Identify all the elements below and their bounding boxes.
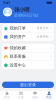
button[interactable]: 退出登录 — [2, 82, 54, 88]
staticText: 消息 — [32, 96, 38, 99]
button[interactable]: 张小明 — [0, 5, 56, 18]
staticText: 首页 — [4, 96, 10, 99]
button[interactable]: 我的收藏 — [2, 44, 54, 52]
staticText: 联系客服 — [10, 54, 26, 59]
button[interactable]: 联系客服 — [2, 52, 54, 61]
staticText: 张小明 — [14, 7, 29, 13]
staticText: ID 8866552104 — [14, 14, 38, 17]
staticText: 我的资产 — [10, 34, 26, 39]
staticText: 9:41 — [3, 0, 10, 5]
button[interactable]: 我的订单 — [2, 24, 54, 32]
staticText: 我的收藏 — [10, 45, 26, 50]
button[interactable]: 设置中心 — [2, 61, 54, 69]
button[interactable]: 首页 — [0, 90, 14, 100]
staticText: 我的 — [46, 96, 52, 99]
staticText: 余额明细 — [37, 35, 49, 38]
staticText: 设置中心 — [10, 63, 26, 67]
button[interactable]: 我的资产 — [2, 33, 54, 41]
button[interactable]: 消息 — [28, 90, 42, 100]
staticText: 退出登录 — [20, 82, 36, 87]
staticText: 分类 — [18, 96, 24, 99]
button[interactable]: 分类 — [14, 90, 28, 100]
staticText: 查看全部 — [37, 26, 49, 30]
button[interactable]: 我的 — [42, 90, 56, 100]
staticText: 我的订单 — [10, 26, 26, 30]
